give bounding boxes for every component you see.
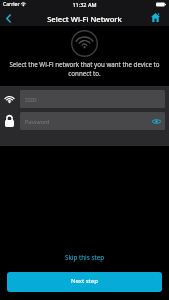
staticText: Next step bbox=[71, 277, 98, 285]
button[interactable]: SSID bbox=[0, 88, 169, 110]
button[interactable]: Skip this step bbox=[0, 249, 169, 265]
button[interactable]: Home bbox=[146, 8, 164, 26]
staticText: Select the Wi-Fi network that you want t… bbox=[6, 60, 163, 78]
button[interactable]: Show password bbox=[148, 112, 165, 130]
staticText: Carrier bbox=[3, 1, 20, 8]
staticText: Skip this step bbox=[65, 253, 105, 262]
button[interactable]: Next step bbox=[7, 272, 162, 292]
staticText: Select Wi-Fi Network bbox=[0, 14, 169, 24]
button[interactable]: Password bbox=[0, 110, 169, 132]
staticText: 11:32 AM bbox=[0, 1, 169, 8]
staticText: Password bbox=[25, 118, 50, 125]
staticText: SSID bbox=[25, 96, 37, 103]
button[interactable]: Back bbox=[0, 10, 17, 27]
